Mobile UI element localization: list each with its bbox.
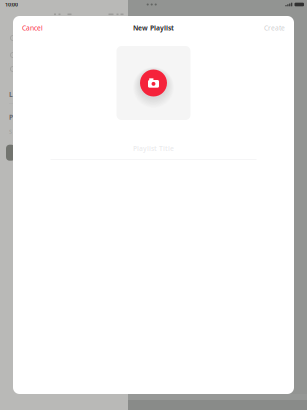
button[interactable]: Cancel [13, 16, 52, 40]
staticText: Create [264, 24, 285, 32]
staticText: New Playlist [133, 24, 174, 32]
staticText: P [9, 113, 13, 122]
button[interactable]: Create [255, 16, 294, 40]
staticText: 10:00 [5, 1, 18, 8]
staticText: S [9, 128, 12, 135]
staticText: Cancel [22, 24, 43, 32]
staticText: L [9, 90, 13, 99]
staticText: Playlist Title [133, 144, 174, 153]
button[interactable]: Add playlist artwork [116, 46, 190, 120]
